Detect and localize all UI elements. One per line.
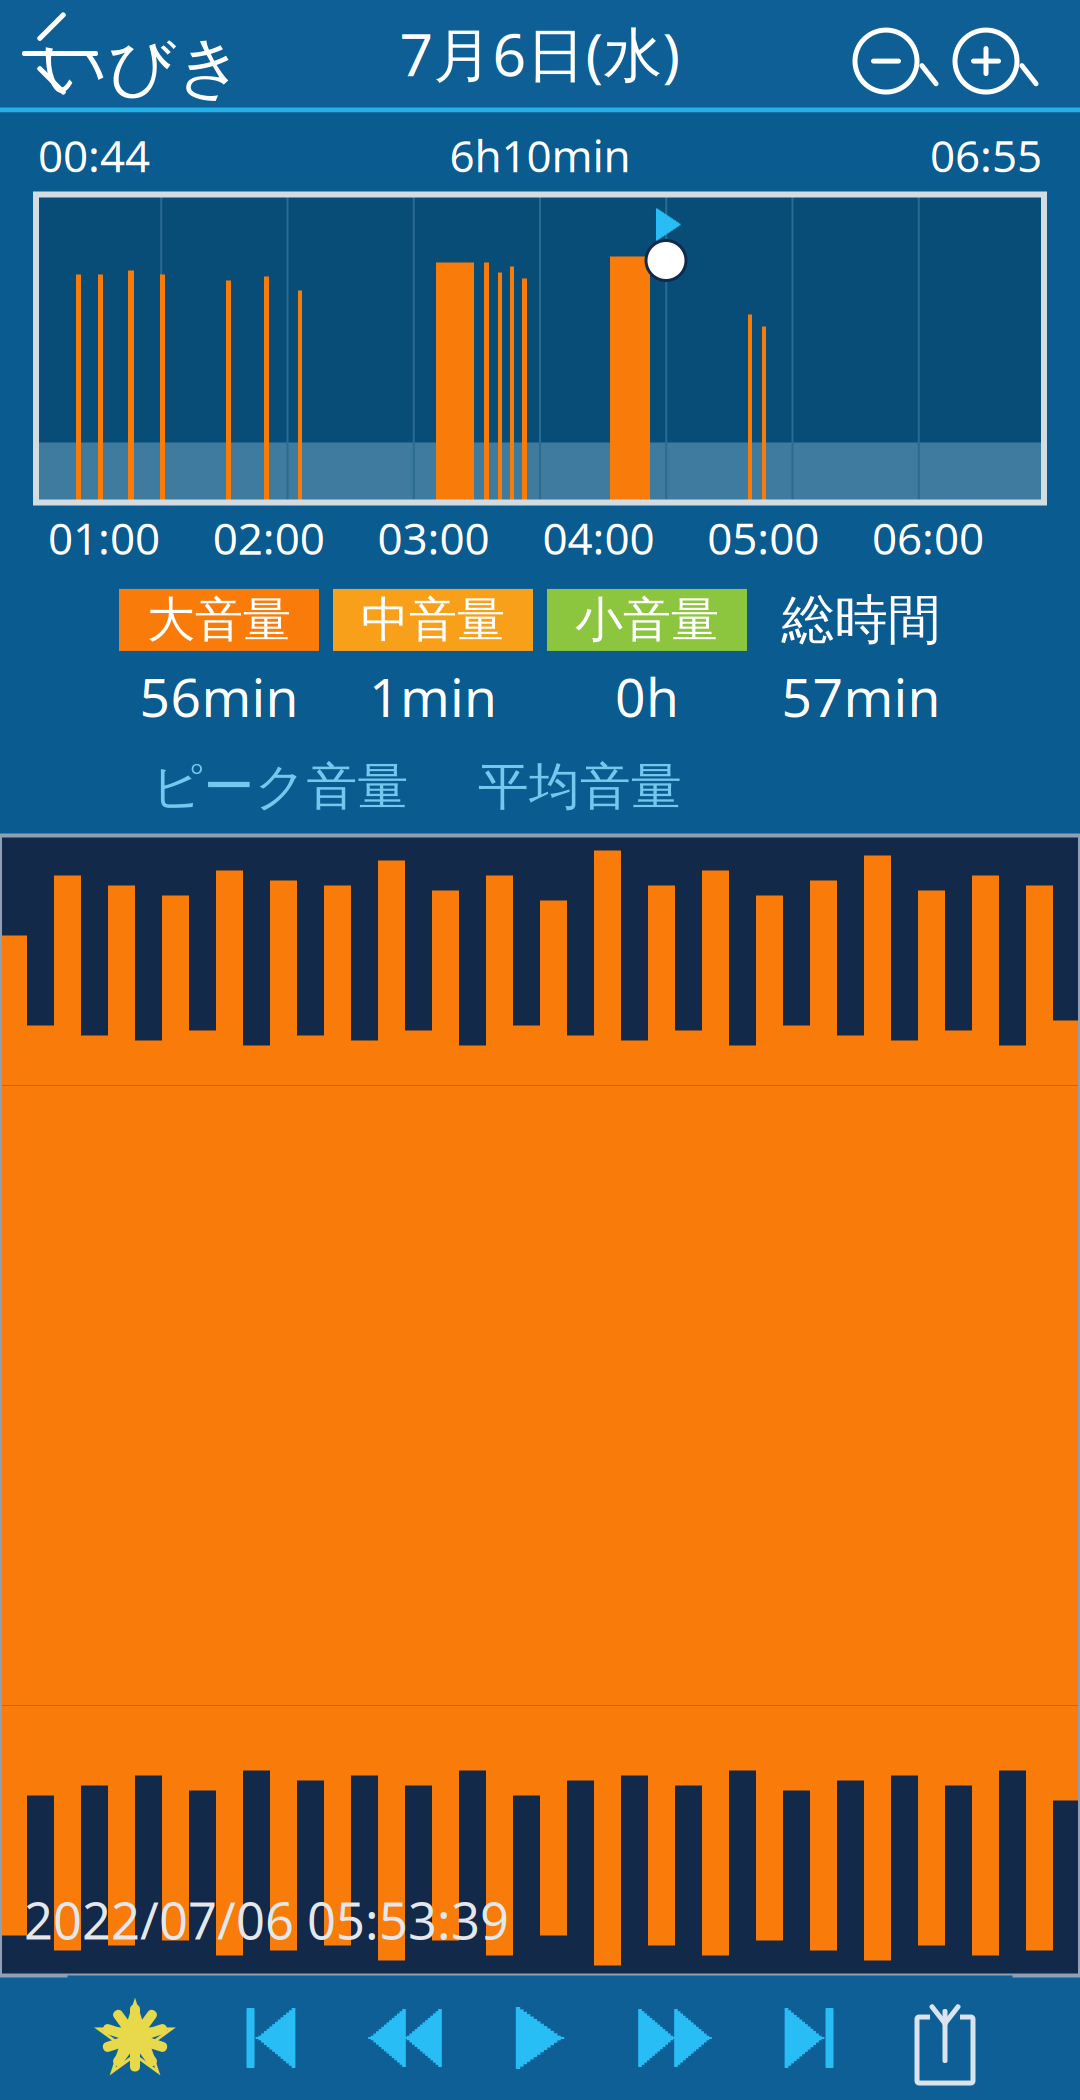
staticText: 06:00 [872, 508, 984, 567]
staticText: 1min [369, 661, 497, 732]
staticText: 57min [781, 661, 940, 732]
staticText: 平均音量 [478, 756, 682, 818]
button[interactable]: Previous [202, 1975, 337, 2100]
staticText: いびき [40, 26, 244, 108]
button[interactable]: Share [877, 1975, 1012, 2100]
staticText: ピーク音量 [151, 756, 408, 818]
button[interactable]: Rewind [337, 1975, 472, 2100]
staticText: 中音量 [361, 590, 505, 649]
staticText: ★ [89, 1980, 180, 2095]
staticText: 小音量 [575, 590, 719, 649]
staticText: 総時間 [781, 587, 940, 653]
button[interactable]: Fast forward [607, 1975, 742, 2100]
button[interactable]: Play [472, 1975, 607, 2100]
button[interactable]: 小音量 [547, 589, 747, 651]
button[interactable]: Zoom in [940, 22, 1040, 112]
staticText: 大音量 [147, 590, 291, 649]
button[interactable]: Favorite [67, 1975, 202, 2100]
staticText: dB [599, 874, 669, 948]
staticText: 6h10min [449, 126, 630, 184]
button[interactable]: 中音量 [333, 589, 533, 651]
staticText: 06:55 [930, 126, 1042, 184]
staticText: 82 [191, 824, 297, 948]
button[interactable]: 大音量 [119, 589, 319, 651]
button[interactable]: Back [0, 0, 120, 107]
button[interactable]: Next [742, 1975, 877, 2100]
staticText: 04:00 [542, 508, 654, 567]
staticText: 05:00 [707, 508, 819, 567]
staticText: 00:44 [38, 126, 150, 184]
staticText: 56min [139, 661, 298, 732]
staticText: 75 [491, 824, 597, 948]
staticText: 7月6日(水) [399, 14, 680, 92]
staticText: 2022/07/06 05:53:39 [24, 1886, 509, 1953]
staticText: 02:00 [213, 508, 325, 567]
staticText: ☆ [87, 1977, 183, 2099]
staticText: 03:00 [378, 508, 490, 567]
staticText: 0h [615, 661, 679, 732]
staticText: dB [299, 874, 369, 948]
button[interactable]: Zoom out [840, 22, 940, 112]
staticText: 01:00 [48, 508, 160, 567]
